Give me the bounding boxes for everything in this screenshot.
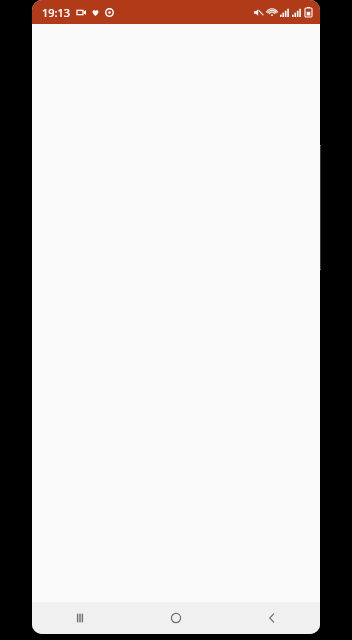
button[interactable]: Back bbox=[224, 602, 320, 634]
button[interactable]: Home bbox=[128, 602, 224, 634]
staticText: 19:13 bbox=[42, 5, 71, 20]
button[interactable]: Recent apps bbox=[32, 602, 128, 634]
